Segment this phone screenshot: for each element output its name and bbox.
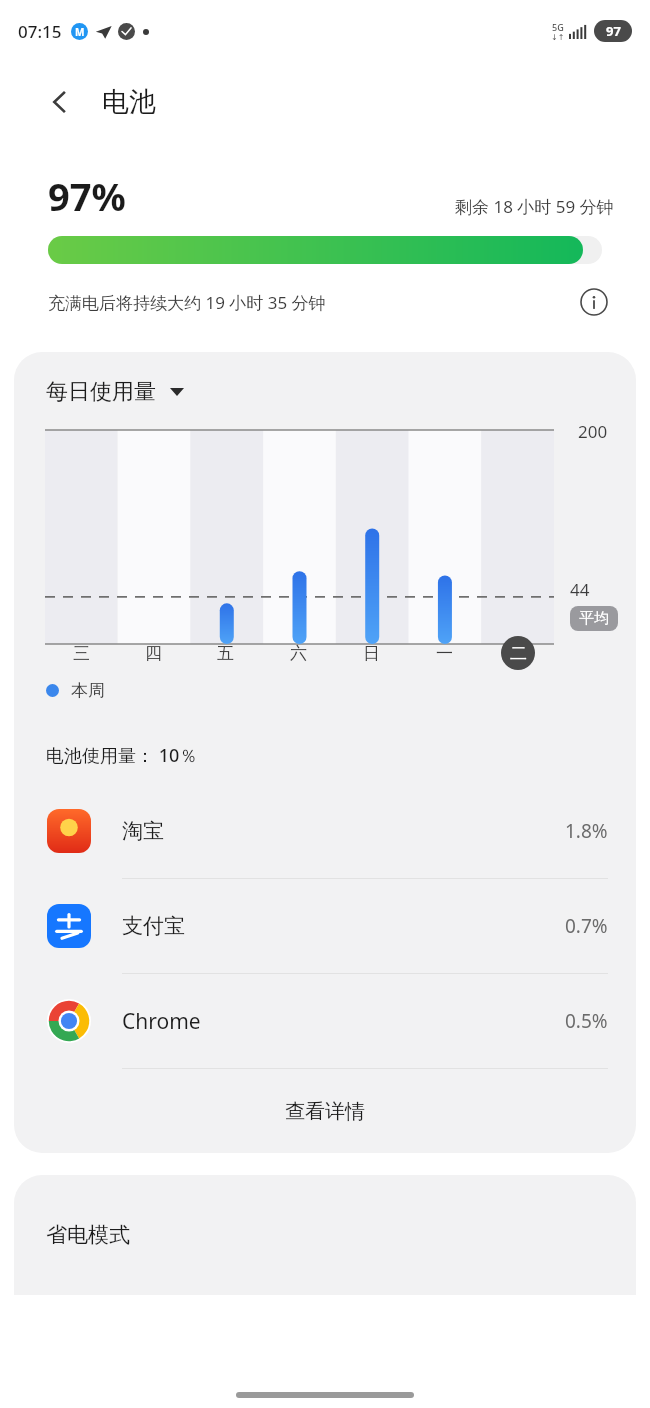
button[interactable]: 查看详情 <box>14 1069 636 1153</box>
button[interactable]: Back <box>40 82 80 122</box>
staticText: 支付宝 <box>122 913 185 939</box>
staticText: 0.7% <box>565 913 608 939</box>
staticText: 查看详情 <box>285 1099 365 1124</box>
staticText: 5G <box>552 21 564 33</box>
staticText: 44 <box>570 578 590 601</box>
button[interactable]: 省电模式 <box>14 1175 636 1295</box>
staticText: 六 <box>290 643 307 664</box>
button[interactable]: 每日使用量 <box>46 378 636 406</box>
staticText: 三 <box>73 643 90 664</box>
staticText: 平均 <box>579 609 609 628</box>
staticText: 一 <box>436 643 453 664</box>
staticText: 省电模式 <box>46 1222 130 1248</box>
staticText: 电池 <box>102 85 156 119</box>
staticText: 淘宝 <box>122 818 164 844</box>
staticText: 07:15 <box>18 20 62 43</box>
button[interactable]: Info <box>574 282 614 322</box>
button[interactable]: 支付宝 <box>14 879 636 973</box>
button[interactable]: 淘宝 <box>14 784 636 878</box>
staticText: 本周 <box>71 680 105 701</box>
staticText: 每日使用量 <box>46 378 156 406</box>
staticText: 剩余 18 小时 59 分钟 <box>455 195 614 218</box>
staticText: 充满电后将持续大约 19 小时 35 分钟 <box>48 291 326 314</box>
staticText: 电池使用量： 10％ <box>46 743 198 768</box>
staticText: 二 <box>510 643 527 664</box>
staticText: M <box>75 25 85 39</box>
staticText: 97 <box>606 22 621 40</box>
staticText: 四 <box>145 643 162 664</box>
staticText: 0.5% <box>565 1008 608 1034</box>
staticText: 日 <box>363 643 380 664</box>
staticText: 1.8% <box>565 818 608 844</box>
staticText: Chrome <box>122 1007 201 1036</box>
staticText: 97% <box>48 170 126 222</box>
staticText: 200 <box>578 420 608 443</box>
staticText: 五 <box>217 643 234 664</box>
staticText: ↓↑ <box>551 33 565 42</box>
button[interactable]: Chrome <box>14 974 636 1068</box>
